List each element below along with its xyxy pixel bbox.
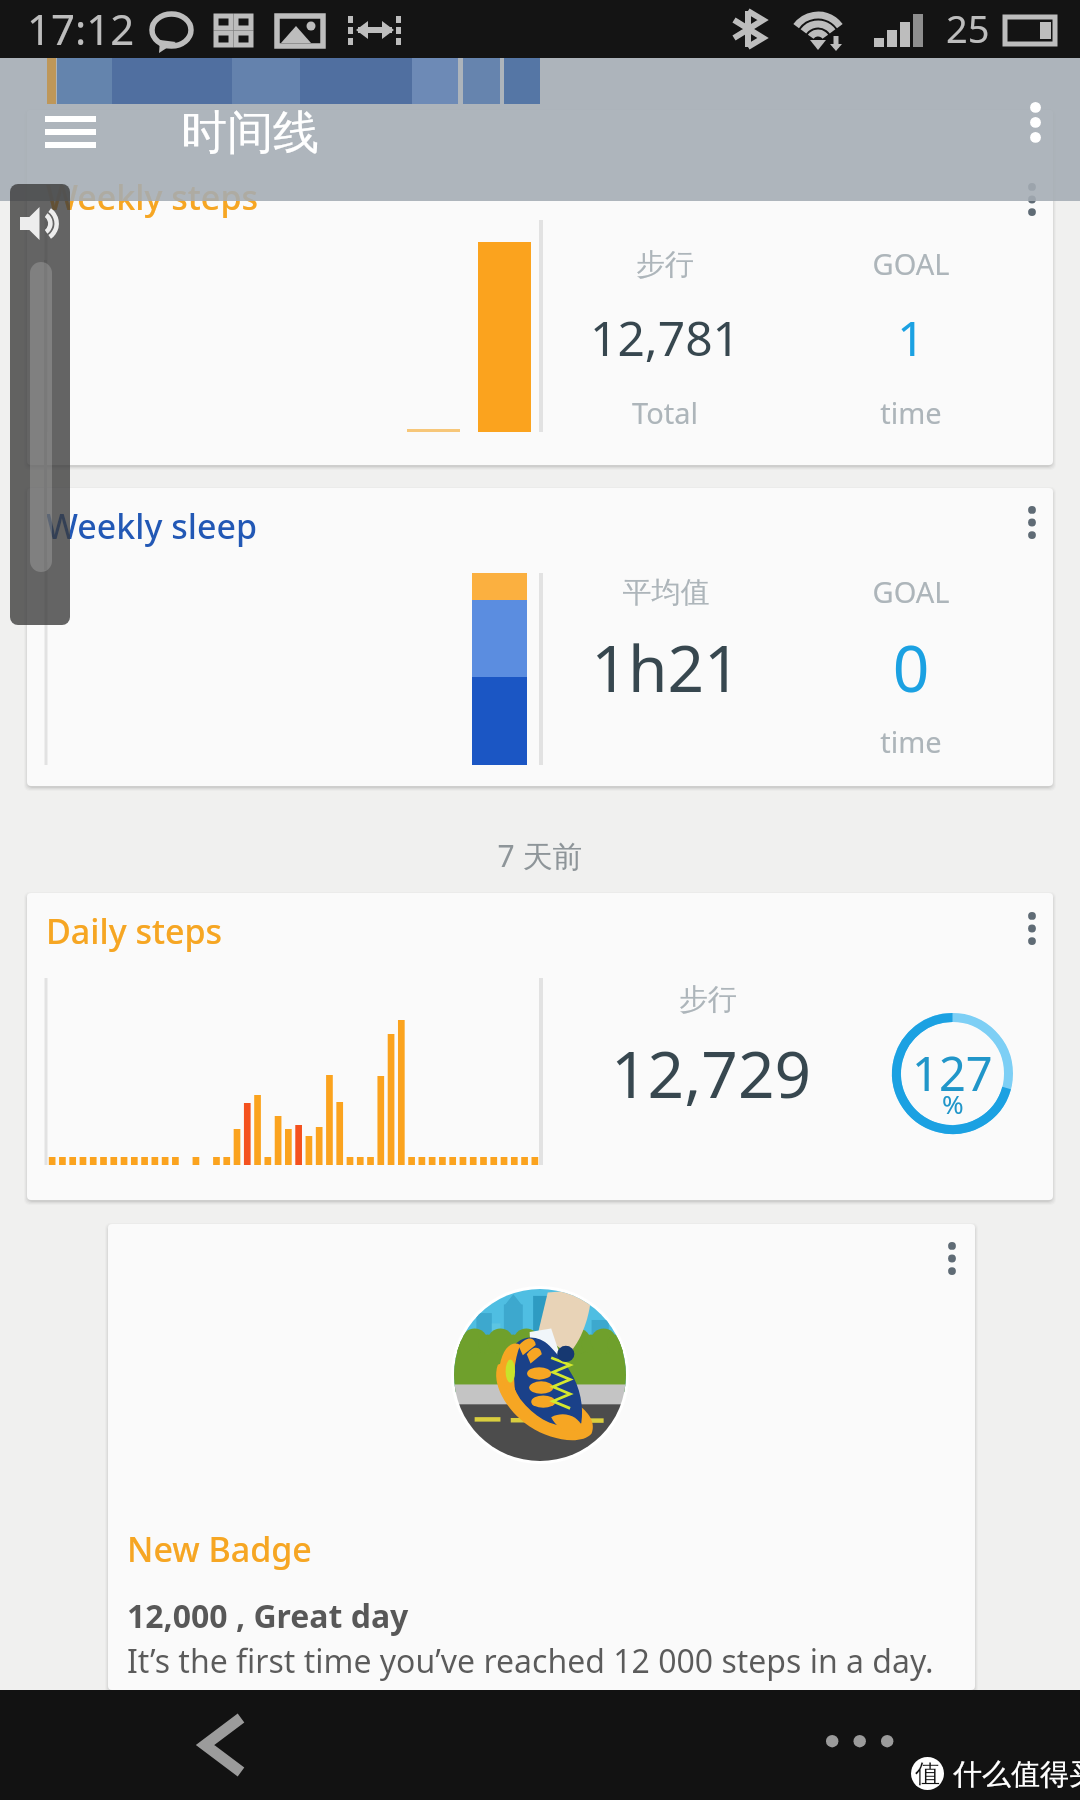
staticText: time — [783, 722, 1039, 761]
staticText: 25 — [946, 2, 990, 54]
staticText: 17:12 — [27, 0, 135, 57]
button[interactable]: More options — [1003, 90, 1067, 154]
staticText: Daily steps — [46, 908, 223, 954]
button[interactable]: Back — [176, 1698, 270, 1792]
button[interactable]: Card options — [108, 1224, 975, 1690]
staticText: Weekly sleep — [46, 503, 258, 549]
staticText: Weekly steps — [46, 174, 258, 220]
staticText: 12,781 — [537, 305, 793, 370]
button[interactable]: Menu — [28, 98, 112, 166]
button[interactable]: Card options — [1004, 495, 1053, 551]
staticText: It’s the first time you’ve reached 12 00… — [127, 1639, 934, 1683]
staticText: 1 — [783, 305, 1039, 370]
staticText: 7 天前 — [0, 835, 1080, 876]
button[interactable]: Weekly steps — [27, 110, 1053, 465]
button[interactable]: Card options — [1004, 172, 1053, 228]
staticText: 12,000 , Great day — [127, 1594, 409, 1638]
staticText: 时间线 — [181, 104, 319, 162]
staticText: time — [783, 393, 1039, 432]
staticText: 127 — [912, 1041, 993, 1105]
staticText: GOAL — [783, 572, 1039, 611]
staticText: GOAL — [783, 244, 1039, 283]
staticText: 什么值得买 — [953, 1756, 1080, 1793]
button[interactable]: Card options — [1004, 901, 1053, 957]
staticText: New Badge — [127, 1526, 312, 1572]
staticText: 步行 — [679, 981, 737, 1018]
staticText: 平均值 — [538, 574, 794, 611]
staticText: 0 — [783, 624, 1039, 711]
staticText: % — [942, 1086, 964, 1121]
staticText: 1h21 — [538, 624, 794, 711]
button[interactable]: Card options — [924, 1231, 975, 1287]
staticText: 12,729 — [611, 1030, 812, 1117]
button[interactable]: Daily steps — [27, 893, 1053, 1200]
button[interactable]: Weekly sleep — [27, 488, 1053, 786]
button[interactable]: Recents — [810, 1712, 910, 1772]
staticText: Total — [537, 393, 793, 432]
staticText: 步行 — [537, 246, 793, 283]
staticText: 值 — [915, 1758, 940, 1789]
